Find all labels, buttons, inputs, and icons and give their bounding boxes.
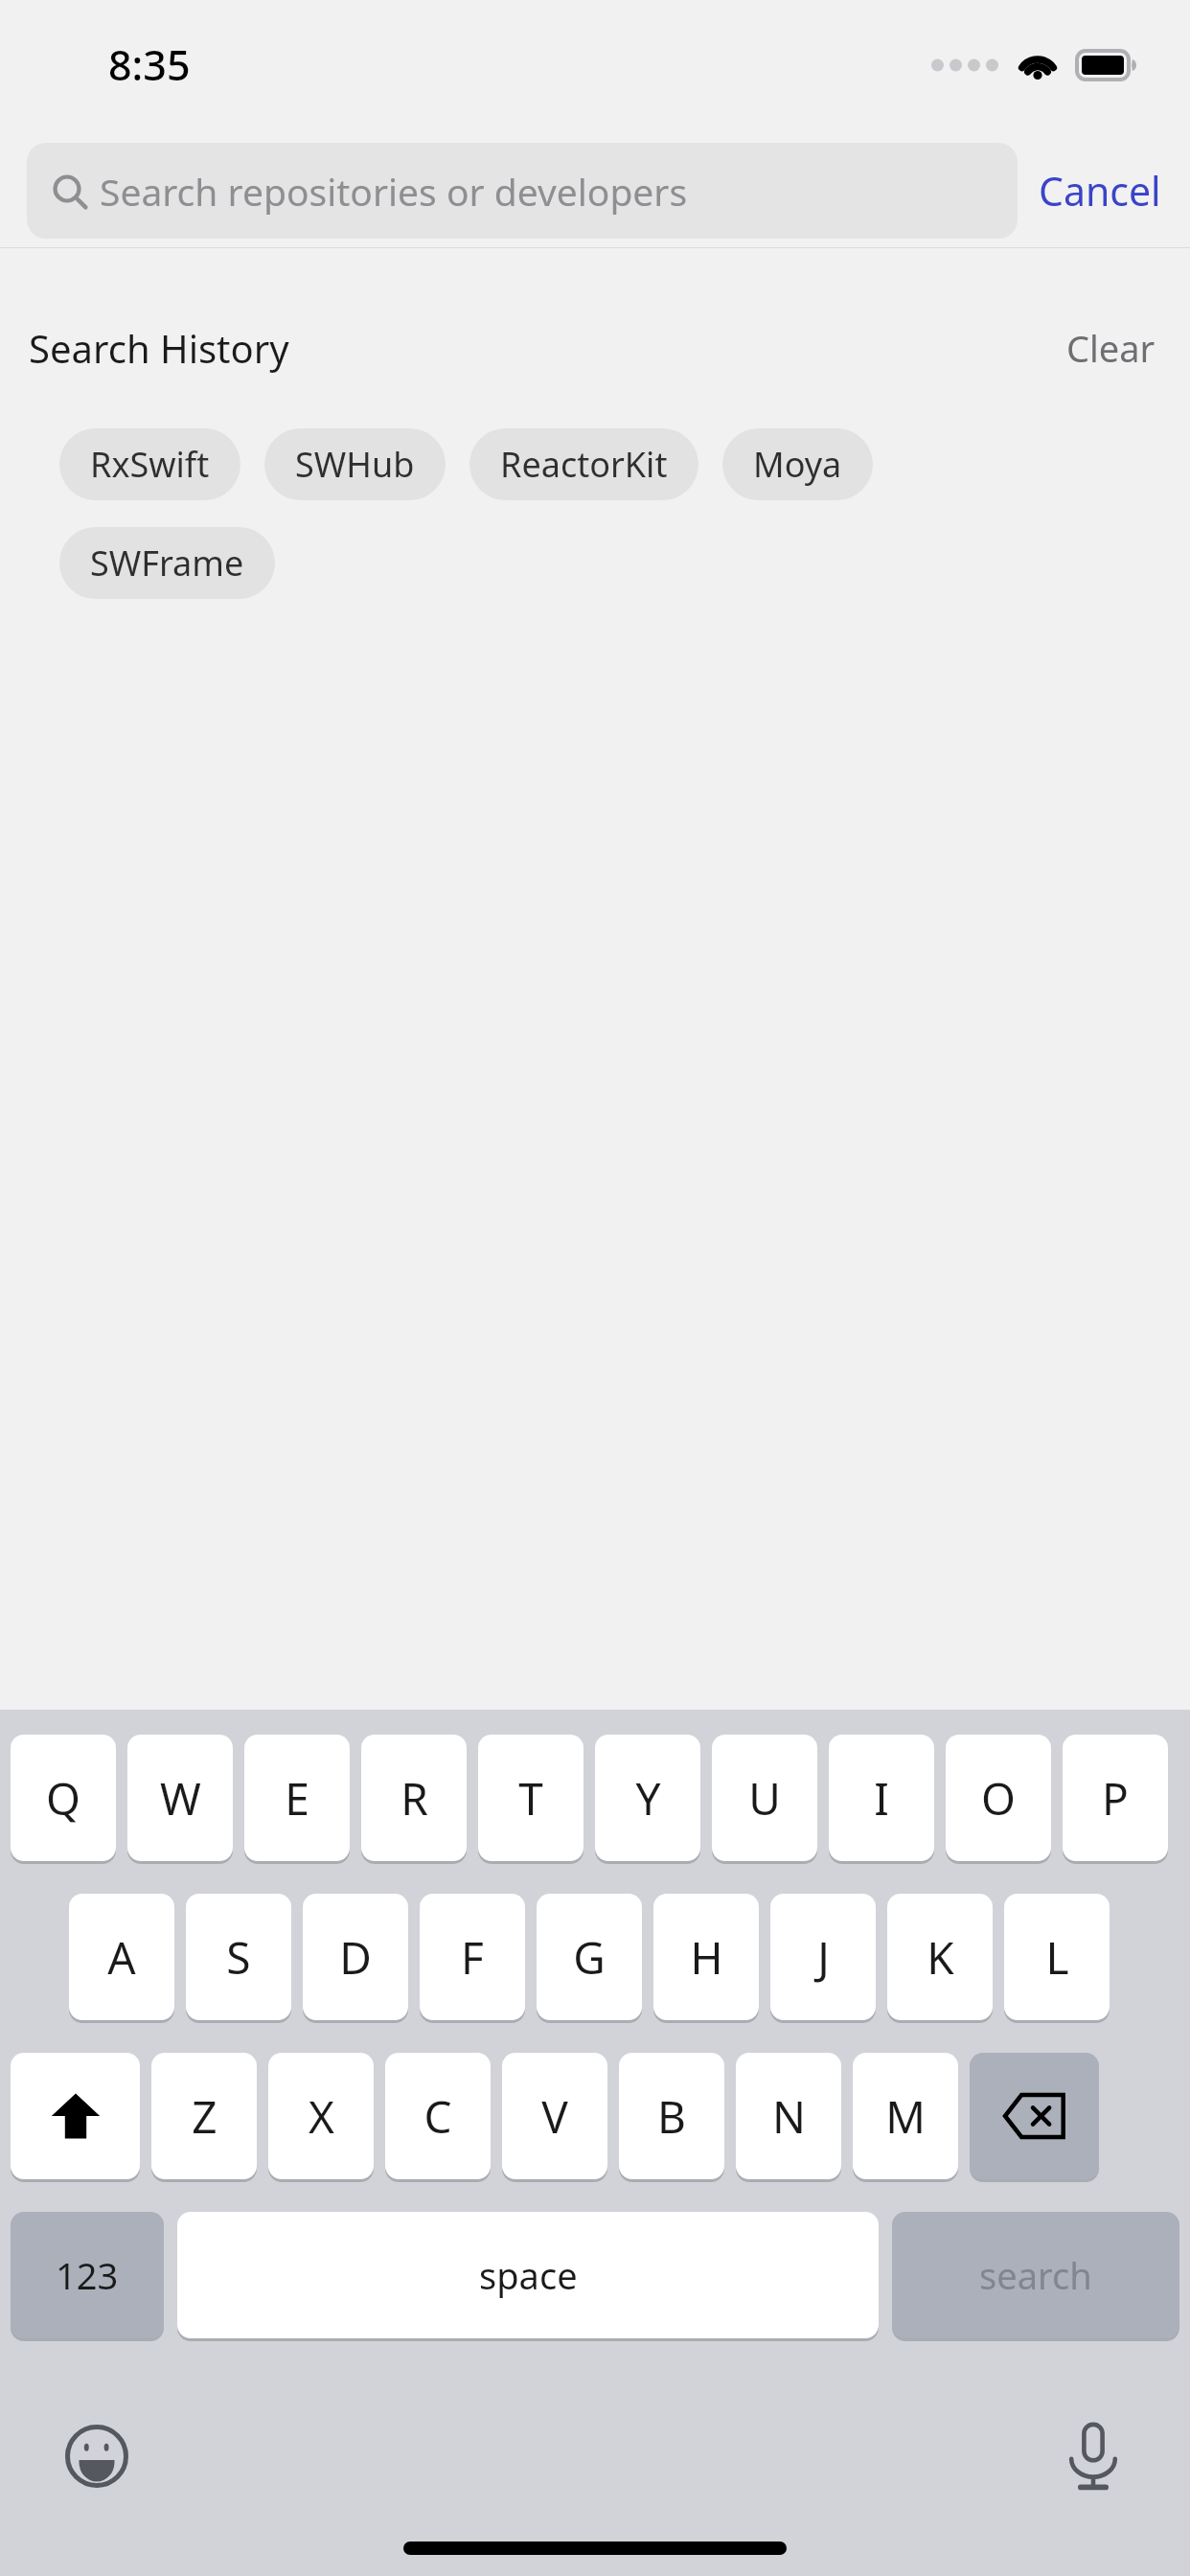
staticText: W bbox=[160, 1768, 201, 1828]
button[interactable]: F bbox=[420, 1894, 525, 2028]
button[interactable]: X bbox=[268, 2053, 374, 2187]
button[interactable]: W bbox=[127, 1735, 233, 1869]
staticText: search bbox=[979, 2250, 1092, 2300]
staticText: Cancel bbox=[1039, 164, 1161, 218]
button[interactable]: Moya bbox=[722, 428, 873, 500]
staticText: T bbox=[518, 1768, 543, 1828]
staticText: M bbox=[885, 2086, 926, 2147]
staticText: Moya bbox=[753, 441, 842, 488]
staticText: C bbox=[423, 2086, 452, 2147]
staticText: X bbox=[309, 2086, 334, 2147]
staticText: 123 bbox=[56, 2250, 119, 2300]
button[interactable]: SWHub bbox=[264, 428, 446, 500]
button[interactable]: U bbox=[712, 1735, 817, 1869]
staticText: V bbox=[541, 2086, 568, 2147]
button[interactable]: R bbox=[361, 1735, 467, 1869]
button[interactable]: L bbox=[1004, 1894, 1110, 2028]
staticText: space bbox=[479, 2250, 578, 2300]
button[interactable]: T bbox=[478, 1735, 584, 1869]
staticText: N bbox=[772, 2086, 806, 2147]
staticText: Clear bbox=[1066, 323, 1156, 373]
button[interactable]: A bbox=[69, 1894, 174, 2028]
button[interactable]: Z bbox=[151, 2053, 257, 2187]
staticText: Y bbox=[635, 1768, 661, 1828]
staticText: Search History bbox=[29, 322, 289, 374]
staticText: P bbox=[1102, 1768, 1129, 1828]
staticText: J bbox=[817, 1927, 830, 1988]
button[interactable]: Search repositories or developers bbox=[27, 143, 1018, 239]
button[interactable]: Y bbox=[595, 1735, 700, 1869]
staticText: B bbox=[657, 2086, 686, 2147]
button[interactable]: J bbox=[770, 1894, 876, 2028]
staticText: 8:35 bbox=[108, 36, 191, 93]
button[interactable]: N bbox=[736, 2053, 841, 2187]
staticText: RxSwift bbox=[90, 441, 210, 488]
staticText: A bbox=[107, 1927, 136, 1988]
button[interactable]: Delete bbox=[970, 2053, 1099, 2187]
staticText: R bbox=[400, 1768, 428, 1828]
staticText: I bbox=[874, 1768, 889, 1828]
button[interactable]: Q bbox=[11, 1735, 116, 1869]
button[interactable]: K bbox=[887, 1894, 993, 2028]
button[interactable]: Clear bbox=[1061, 317, 1161, 379]
button[interactable]: G bbox=[537, 1894, 642, 2028]
button[interactable]: Dictation bbox=[1052, 2415, 1134, 2497]
button[interactable]: RxSwift bbox=[59, 428, 240, 500]
staticText: G bbox=[573, 1927, 606, 1988]
staticText: O bbox=[981, 1768, 1016, 1828]
button[interactable]: I bbox=[829, 1735, 934, 1869]
staticText: U bbox=[748, 1768, 781, 1828]
button[interactable]: search bbox=[892, 2212, 1179, 2346]
button[interactable]: Cancel bbox=[1018, 154, 1167, 227]
staticText: H bbox=[690, 1927, 723, 1988]
staticText: F bbox=[461, 1927, 484, 1988]
staticText: D bbox=[339, 1927, 372, 1988]
staticText: K bbox=[927, 1927, 954, 1988]
button[interactable]: V bbox=[502, 2053, 607, 2187]
button[interactable]: E bbox=[244, 1735, 350, 1869]
button[interactable]: 123 bbox=[11, 2212, 164, 2346]
button[interactable]: H bbox=[653, 1894, 759, 2028]
staticText: SWFrame bbox=[90, 540, 244, 586]
staticText: SWHub bbox=[295, 441, 415, 488]
button[interactable]: Emoji keyboard bbox=[56, 2415, 138, 2497]
button[interactable]: SWFrame bbox=[59, 527, 275, 599]
button[interactable]: D bbox=[303, 1894, 408, 2028]
button[interactable]: O bbox=[946, 1735, 1051, 1869]
button[interactable]: P bbox=[1063, 1735, 1168, 1869]
button[interactable]: S bbox=[186, 1894, 291, 2028]
staticText: ReactorKit bbox=[500, 441, 668, 488]
button[interactable]: M bbox=[853, 2053, 958, 2187]
button[interactable]: ReactorKit bbox=[469, 428, 698, 500]
staticText: S bbox=[226, 1927, 251, 1988]
staticText: L bbox=[1045, 1927, 1069, 1988]
staticText: Z bbox=[192, 2086, 217, 2147]
button[interactable]: space bbox=[177, 2212, 879, 2346]
staticText: Search repositories or developers bbox=[100, 166, 688, 217]
staticText: Q bbox=[46, 1768, 80, 1828]
staticText: E bbox=[285, 1768, 309, 1828]
button[interactable]: C bbox=[385, 2053, 491, 2187]
button[interactable]: Shift bbox=[11, 2053, 140, 2187]
button[interactable]: B bbox=[619, 2053, 724, 2187]
